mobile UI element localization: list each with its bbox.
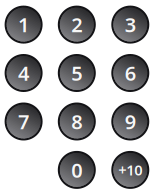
button[interactable]: +10 — [111, 151, 149, 189]
staticText: 6 — [125, 60, 136, 86]
button[interactable]: 8 — [58, 102, 96, 140]
staticText: 0 — [71, 157, 82, 183]
button[interactable]: 2 — [58, 6, 96, 44]
staticText: +10 — [118, 160, 142, 180]
button[interactable]: 9 — [111, 102, 149, 140]
button[interactable]: 7 — [5, 102, 43, 140]
staticText: 4 — [18, 60, 29, 86]
staticText: 1 — [18, 11, 29, 38]
button[interactable]: 4 — [5, 54, 43, 92]
button[interactable]: 6 — [111, 54, 149, 92]
button[interactable]: 5 — [58, 54, 96, 92]
staticText: 5 — [71, 60, 82, 86]
button[interactable]: 0 — [58, 151, 96, 189]
button[interactable]: 3 — [111, 6, 149, 44]
staticText: 9 — [125, 108, 136, 135]
staticText: 2 — [71, 11, 82, 38]
staticText: 3 — [125, 11, 136, 38]
staticText: 8 — [71, 108, 82, 135]
button[interactable]: 1 — [5, 6, 43, 44]
staticText: 7 — [18, 108, 29, 135]
